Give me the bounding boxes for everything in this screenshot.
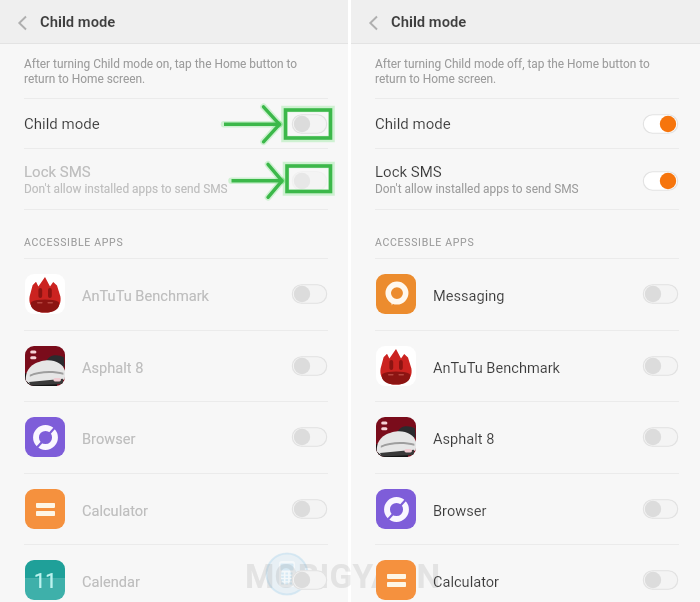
button[interactable]: Switch on (642, 171, 679, 191)
staticText: Calculator (433, 573, 500, 590)
button[interactable]: Switch off (642, 427, 679, 447)
button[interactable]: 11 (0, 544, 348, 602)
button[interactable]: Back (351, 0, 391, 43)
button[interactable]: Calculator (351, 544, 700, 602)
button[interactable]: Asphalt 8 (0, 330, 348, 401)
button[interactable]: AnTuTu Benchmark (351, 330, 700, 401)
button[interactable]: Switch off (291, 570, 328, 590)
button[interactable] (0, 99, 348, 148)
staticText: Browser (433, 502, 487, 519)
button[interactable]: Back (0, 0, 40, 43)
button[interactable]: Switch off (291, 114, 328, 134)
staticText: Child mode (24, 115, 100, 133)
button[interactable]: Switch off (642, 356, 679, 376)
staticText: Calculator (82, 502, 149, 519)
staticText: After turning Child mode off, tap the Ho… (375, 57, 650, 86)
staticText: Child mode (391, 13, 467, 30)
button[interactable]: Switch off (291, 499, 328, 519)
button[interactable]: Browser (351, 473, 700, 544)
staticText: Asphalt 8 (433, 430, 495, 447)
staticText: Asphalt 8 (82, 359, 144, 376)
button[interactable] (0, 149, 348, 209)
staticText: Lock SMS (24, 163, 91, 181)
staticText: ACCESSIBLE APPS (375, 236, 475, 248)
staticText: Don't allow installed apps to send SMS (24, 182, 228, 196)
button[interactable]: Switch off (291, 171, 328, 191)
staticText: Child mode (40, 13, 116, 30)
button[interactable]: Switch off (642, 284, 679, 304)
staticText: 11 (34, 569, 57, 592)
button[interactable]: Switch off (291, 284, 328, 304)
staticText: MOBIGYAAN (245, 557, 441, 596)
staticText: Don't allow installed apps to send SMS (375, 182, 579, 196)
button[interactable]: Switch off (291, 356, 328, 376)
button[interactable] (351, 149, 700, 209)
staticText: Messaging (433, 287, 505, 304)
button[interactable]: Browser (0, 401, 348, 472)
button[interactable]: Switch off (642, 570, 679, 590)
button[interactable]: Calculator (0, 473, 348, 544)
button[interactable]: Switch on (642, 114, 679, 134)
button[interactable]: Switch off (291, 427, 328, 447)
staticText: AnTuTu Benchmark (82, 287, 209, 304)
button[interactable]: Messaging (351, 258, 700, 329)
staticText: ACCESSIBLE APPS (24, 236, 124, 248)
staticText: Lock SMS (375, 163, 442, 181)
staticText: Child mode (375, 115, 451, 133)
staticText: Browser (82, 430, 136, 447)
staticText: Calendar (82, 573, 140, 590)
button[interactable]: Asphalt 8 (351, 401, 700, 472)
button[interactable] (351, 99, 700, 148)
button[interactable]: Switch off (642, 499, 679, 519)
staticText: After turning Child mode on, tap the Hom… (24, 57, 298, 86)
staticText: AnTuTu Benchmark (433, 359, 560, 376)
button[interactable]: AnTuTu Benchmark (0, 258, 348, 329)
